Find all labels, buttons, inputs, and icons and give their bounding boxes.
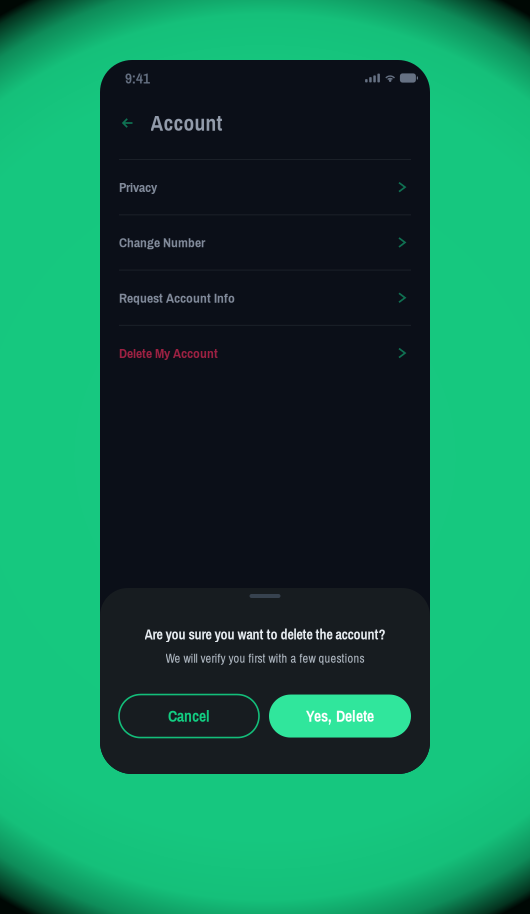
button[interactable]: Cancel — [119, 695, 259, 738]
staticText: We will verify you first with a few ques… — [165, 650, 364, 667]
staticText: Request Account Info — [119, 289, 235, 307]
staticText: Privacy — [119, 178, 157, 196]
staticText: Cancel — [168, 705, 210, 727]
staticText: Change Number — [119, 233, 205, 252]
button[interactable]: Privacy — [100, 160, 430, 214]
button[interactable]: Back — [116, 111, 139, 135]
button[interactable]: Change Number — [100, 215, 430, 270]
button[interactable]: Delete My Account — [100, 326, 430, 380]
staticText: Delete My Account — [119, 344, 218, 362]
button[interactable]: Yes, Delete — [269, 695, 411, 738]
button[interactable]: Request Account Info — [100, 271, 430, 325]
staticText: Yes, Delete — [306, 705, 374, 727]
staticText: Are you sure you want to delete the acco… — [144, 625, 385, 644]
staticText: Account — [150, 109, 222, 137]
staticText: 9:41 — [125, 68, 150, 88]
